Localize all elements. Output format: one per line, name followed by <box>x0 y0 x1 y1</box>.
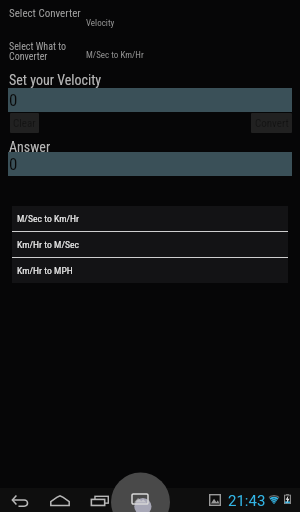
button[interactable]: 0 <box>8 88 292 112</box>
button[interactable]: M/Sec to Km/Hr <box>12 206 288 231</box>
staticText: 21:43 <box>228 492 266 510</box>
staticText: 0 <box>9 90 18 110</box>
button[interactable]: Km/Hr to M/Sec <box>12 232 288 257</box>
staticText: M/Sec to Km/Hr <box>17 213 80 224</box>
staticText: Velocity <box>86 18 115 29</box>
button[interactable]: Select Converter <box>0 2 300 36</box>
button[interactable]: Convert <box>251 113 292 133</box>
button[interactable]: Clear <box>10 113 39 133</box>
staticText: Km/Hr to M/Sec <box>17 239 80 250</box>
button[interactable]: Home <box>48 488 72 512</box>
staticText: Select Converter <box>9 7 81 20</box>
staticText: Answer <box>9 139 51 155</box>
button[interactable]: Recent apps <box>88 488 112 512</box>
staticText: Clear <box>13 117 36 130</box>
staticText: 0 <box>9 154 18 174</box>
staticText: Set your Velocity <box>9 72 102 88</box>
button[interactable]: Screenshot <box>128 488 153 512</box>
button[interactable]: Back <box>8 488 32 512</box>
button[interactable]: 0 <box>8 152 292 176</box>
button[interactable]: Select What to Converter <box>0 36 300 66</box>
staticText: Convert <box>255 117 289 130</box>
staticText: M/Sec to Km/Hr <box>86 50 144 61</box>
button[interactable]: Km/Hr to MPH <box>12 258 288 283</box>
staticText: Km/Hr to MPH <box>17 265 73 276</box>
staticText: Select What to Converter <box>9 41 67 63</box>
